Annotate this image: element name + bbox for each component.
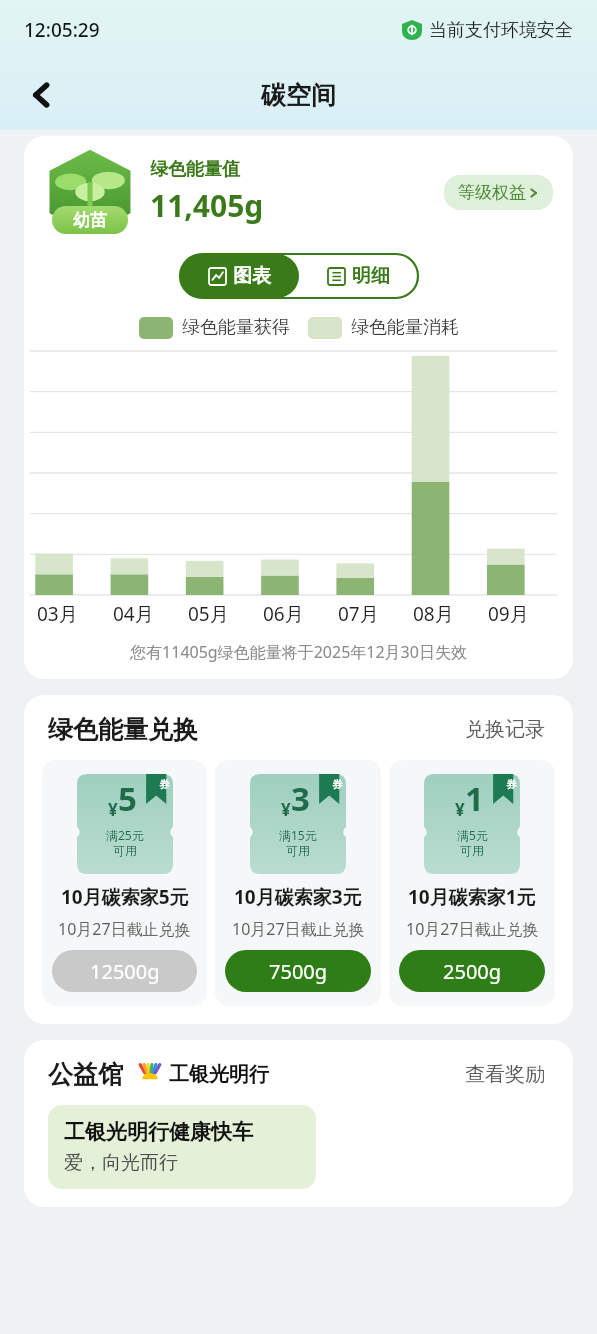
staticText: ¥ <box>281 798 291 821</box>
staticText: 10月碳索家1元 <box>408 884 536 910</box>
staticText: 12500g <box>90 958 160 985</box>
staticText: 工银光明行健康快车 <box>64 1119 253 1145</box>
staticText: 10月27日截止兑换 <box>58 918 191 940</box>
staticText: 08月 <box>413 601 454 627</box>
staticText: 绿色能量值 <box>150 158 240 181</box>
staticText: 券 <box>159 778 169 791</box>
staticText: 10月27日截止兑换 <box>406 918 539 940</box>
staticText: 绿色能量获得 <box>182 316 290 339</box>
staticText: 3 <box>291 776 310 821</box>
staticText: 2500g <box>443 958 502 985</box>
staticText: 满5元 <box>457 827 488 843</box>
button[interactable]: 7500g <box>225 950 371 992</box>
staticText: 可用 <box>113 843 137 858</box>
button[interactable]: 等级权益 <box>444 175 553 210</box>
staticText: 等级权益 <box>458 182 526 203</box>
button[interactable]: Back <box>18 71 66 119</box>
staticText: 10月碳索家3元 <box>234 884 362 910</box>
staticText: 绿色能量消耗 <box>351 316 459 339</box>
staticText: 1 <box>465 776 484 821</box>
staticText: 12:05:29 <box>24 17 100 43</box>
staticText: 查看奖励 <box>465 1062 545 1087</box>
staticText: 10月碳索家5元 <box>61 884 189 910</box>
staticText: 爱，向光而行 <box>64 1151 178 1175</box>
button[interactable]: 工银光明行健康快车 <box>48 1105 316 1189</box>
button[interactable]: ¥ <box>389 760 555 1006</box>
staticText: 03月 <box>37 601 78 627</box>
staticText: 兑换记录 <box>465 717 545 742</box>
staticText: 5 <box>118 776 137 821</box>
button[interactable]: 图表 <box>180 254 299 298</box>
staticText: 满25元 <box>106 827 144 843</box>
staticText: 04月 <box>113 601 154 627</box>
staticText: 绿色能量兑换 <box>48 714 198 745</box>
staticText: 明细 <box>352 264 390 288</box>
staticText: 可用 <box>286 843 310 858</box>
staticText: 11,405g <box>150 185 264 226</box>
staticText: 满15元 <box>279 827 317 843</box>
staticText: 10月27日截止兑换 <box>232 918 365 940</box>
button[interactable]: 明细 <box>299 254 418 298</box>
staticText: 07月 <box>338 601 379 627</box>
button[interactable]: 兑换记录 <box>461 713 549 746</box>
staticText: ¥ <box>108 798 118 821</box>
staticText: 图表 <box>233 264 271 288</box>
button[interactable]: ¥ <box>42 760 207 1006</box>
staticText: 06月 <box>263 601 304 627</box>
staticText: 工银光明行 <box>169 1062 269 1087</box>
staticText: 当前支付环境安全 <box>429 19 573 42</box>
staticText: 碳空间 <box>261 80 336 111</box>
button[interactable]: 查看奖励 <box>461 1058 549 1091</box>
staticText: 券 <box>332 778 342 791</box>
staticText: 7500g <box>269 958 328 985</box>
staticText: 09月 <box>488 601 529 627</box>
staticText: 05月 <box>188 601 229 627</box>
button[interactable]: 12500g <box>52 950 197 992</box>
staticText: 券 <box>506 778 516 791</box>
staticText: 公益馆 <box>48 1059 123 1090</box>
staticText: 您有11405g绿色能量将于2025年12月30日失效 <box>24 641 573 663</box>
button[interactable]: ¥ <box>215 760 381 1006</box>
staticText: 幼苗 <box>73 210 107 231</box>
staticText: ¥ <box>455 798 465 821</box>
staticText: 可用 <box>460 843 484 858</box>
button[interactable]: 2500g <box>399 950 545 992</box>
